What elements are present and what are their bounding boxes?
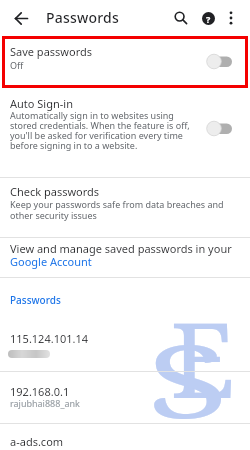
staticText: Off (10, 59, 24, 71)
staticText: Keep your passwords safe from data breac… (10, 198, 224, 221)
staticText: 115.124.101.14 (10, 331, 89, 346)
button[interactable]: Check passwords (0, 180, 250, 230)
staticText: Passwords (10, 293, 61, 307)
staticText: Auto Sign-in (10, 96, 73, 111)
staticText: rajubhai888_ank (10, 397, 80, 409)
staticText: Automatically sign in to websites using … (10, 109, 190, 151)
staticText: S (147, 311, 229, 447)
button[interactable]: Save passwords (2, 36, 248, 88)
staticText: Check passwords (10, 184, 100, 199)
staticText: 192.168.0.1 (10, 384, 70, 399)
button[interactable]: 115.124.101.14 (0, 325, 250, 370)
button[interactable]: Google Account (10, 254, 92, 269)
button[interactable] (218, 5, 244, 31)
staticText: Passwords (46, 8, 119, 27)
button[interactable]: ? (195, 5, 221, 31)
staticText: E (170, 286, 236, 429)
button[interactable] (168, 5, 194, 31)
button[interactable]: 192.168.0.1 (0, 375, 250, 422)
button[interactable]: Auto Sign-in (0, 92, 250, 154)
staticText: View and manage saved passwords in your (10, 241, 232, 256)
button[interactable] (206, 53, 233, 70)
staticText: Save passwords (10, 44, 92, 59)
staticText: ? (206, 13, 211, 25)
staticText: a-ads.com (10, 434, 64, 449)
button[interactable] (8, 5, 34, 31)
button[interactable]: a-ads.com (0, 424, 250, 450)
staticText: Google Account (10, 254, 92, 269)
button[interactable] (206, 120, 233, 137)
